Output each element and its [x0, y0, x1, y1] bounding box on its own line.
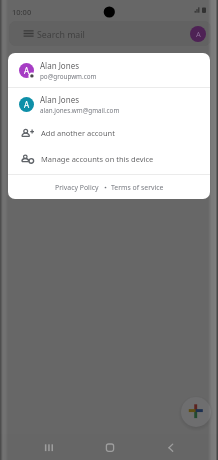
button[interactable]: Account and settings [190, 26, 206, 42]
staticText: Manage accounts on this device [41, 154, 154, 164]
staticText: 10:00 [12, 7, 32, 17]
button[interactable]: Manage accounts on this device [8, 146, 210, 172]
button[interactable]: Compose [181, 397, 211, 427]
button[interactable]: Open navigation drawer [9, 21, 211, 46]
staticText: po@groupwm.com [40, 72, 97, 81]
button[interactable]: Add another account [8, 120, 210, 146]
other: Open navigation drawer [9, 21, 211, 46]
button[interactable]: Terms of service [110, 181, 165, 194]
staticText: A [196, 29, 201, 39]
button[interactable]: A [8, 53, 210, 87]
button[interactable]: A [8, 88, 210, 120]
staticText: alan.jones.wm@gmail.com [40, 106, 120, 115]
staticText: A [24, 99, 30, 110]
staticText: Search mail [37, 29, 85, 41]
button[interactable]: Privacy Policy [54, 181, 100, 194]
staticText: Alan Jones [40, 60, 79, 71]
staticText: Add another account [41, 128, 115, 138]
staticText: Alan Jones [40, 94, 79, 105]
staticText: A [24, 65, 30, 76]
